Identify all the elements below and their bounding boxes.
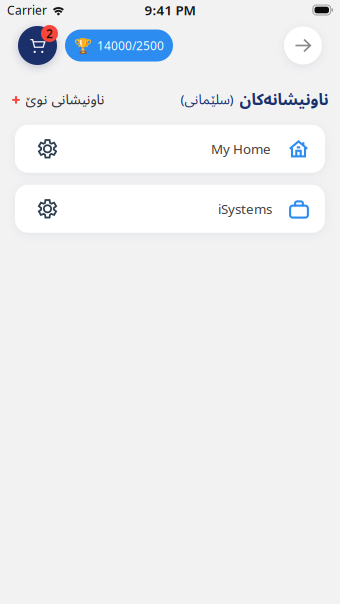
button[interactable]: Next [284, 26, 322, 64]
staticText: 9:41 PM [144, 1, 195, 19]
button[interactable]: ناونیشانی نوێ [12, 85, 104, 115]
staticText: 14000/2500 [97, 37, 164, 53]
button[interactable]: My Home [15, 125, 325, 173]
staticText: (سلێمانی) [180, 86, 233, 114]
staticText: My Home [211, 140, 271, 158]
staticText: ناونیشانی نوێ [25, 85, 104, 115]
staticText: 🏆 [74, 37, 92, 54]
button[interactable]: 🏆 [65, 29, 173, 61]
staticText: Carrier [7, 2, 47, 18]
button[interactable]: Cart [18, 26, 57, 65]
staticText: iSystems [218, 200, 272, 218]
button[interactable]: iSystems [15, 185, 325, 233]
staticText: 2 [46, 25, 53, 41]
staticText: ناونیشانەکان [239, 83, 328, 117]
